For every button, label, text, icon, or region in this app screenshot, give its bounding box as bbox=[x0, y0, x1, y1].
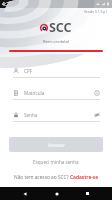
button[interactable]: Cadastre-se bbox=[70, 174, 99, 181]
staticText: Não tem acesso ao SCC? bbox=[14, 174, 70, 181]
staticText: Bem-vindo(a) bbox=[43, 39, 70, 45]
staticText: Versão 0.1.9-p1 bbox=[84, 10, 108, 14]
button[interactable]: CPF bbox=[13, 65, 100, 78]
staticText: Senha bbox=[24, 112, 38, 118]
button[interactable]: Matrícula bbox=[13, 87, 100, 100]
button[interactable]: Home bbox=[50, 187, 63, 200]
staticText: Matrícula bbox=[24, 90, 45, 96]
button[interactable]: Acessar bbox=[9, 137, 103, 152]
button[interactable]: Back bbox=[18, 187, 31, 200]
staticText: CPF bbox=[24, 68, 33, 74]
button[interactable]: Senha bbox=[13, 109, 100, 122]
staticText: 4:20 bbox=[2, 1, 12, 8]
button[interactable]: Esqueci minha senha bbox=[30, 157, 82, 167]
staticText: SCC bbox=[49, 19, 72, 36]
staticText: Acessar bbox=[48, 142, 65, 148]
button[interactable]: Recent apps bbox=[81, 187, 94, 200]
